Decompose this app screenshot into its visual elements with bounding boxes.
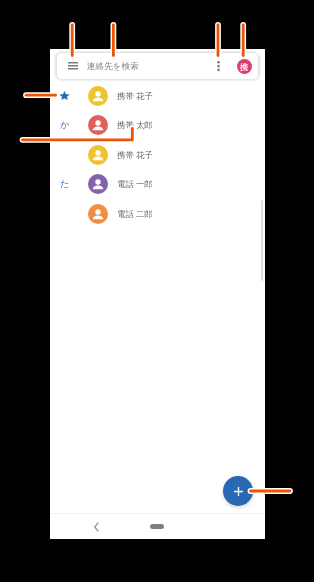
staticText: 携帯 太郎 <box>117 119 153 130</box>
staticText: 電話 二郎 <box>117 208 153 219</box>
button[interactable]: 電話 二郎 <box>50 199 265 228</box>
button[interactable]: Create contact <box>223 476 253 506</box>
staticText: 携帯 花子 <box>117 90 153 101</box>
button[interactable]: Back <box>86 517 106 537</box>
staticText: た <box>60 178 70 190</box>
button[interactable]: た <box>50 169 265 198</box>
button[interactable]: 携帯 花子 <box>50 140 265 169</box>
staticText: か <box>60 119 70 131</box>
button[interactable]: More options <box>209 56 228 75</box>
staticText: 電話 一郎 <box>117 178 153 189</box>
button[interactable]: 携帯 花子 <box>50 81 265 110</box>
button[interactable]: Home <box>142 519 172 533</box>
button[interactable]: Open navigation menu <box>57 53 258 79</box>
button[interactable]: Open navigation menu <box>63 56 82 75</box>
staticText: 連絡先を検索 <box>87 61 139 72</box>
staticText: 携 <box>240 62 249 72</box>
button[interactable]: か <box>50 110 265 139</box>
button[interactable]: Account <box>235 57 254 76</box>
staticText: 携帯 花子 <box>117 149 153 160</box>
